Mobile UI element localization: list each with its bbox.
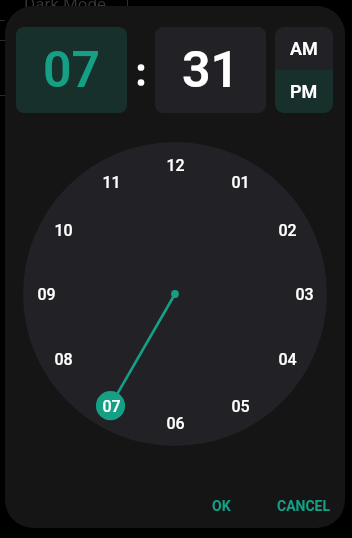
button[interactable]: 31 (155, 27, 266, 113)
staticText: AM (290, 38, 318, 59)
staticText: 03 (295, 285, 314, 304)
button[interactable]: CANCEL (265, 490, 343, 522)
staticText: CANCEL (277, 498, 331, 514)
button[interactable]: OK (200, 490, 243, 522)
staticText: 10 (54, 221, 73, 240)
button[interactable]: 03 (289, 279, 319, 309)
staticText: 04 (278, 350, 297, 369)
staticText: 07 (43, 41, 101, 100)
staticText: PM (290, 81, 318, 102)
staticText: 01 (231, 173, 250, 192)
button[interactable]: 08 (48, 344, 78, 374)
staticText: 02 (278, 221, 297, 240)
button[interactable]: PM (275, 70, 333, 113)
staticText: 05 (231, 397, 250, 416)
button[interactable]: 11 (96, 167, 126, 197)
staticText: 12 (166, 156, 185, 175)
button[interactable]: 05 (225, 391, 255, 421)
button[interactable]: 02 (272, 215, 302, 245)
button[interactable]: 07 (96, 391, 126, 421)
staticText: Dark Mode (24, 0, 107, 14)
staticText: 06 (166, 414, 185, 433)
button[interactable]: 06 (160, 408, 190, 438)
staticText: 07 (102, 397, 121, 416)
staticText: 31 (182, 41, 240, 100)
staticText: 08 (54, 350, 73, 369)
staticText: OK (212, 498, 231, 514)
button[interactable]: 04 (272, 344, 302, 374)
button[interactable]: 07 (16, 27, 127, 113)
button[interactable]: AM (275, 27, 333, 70)
staticText: 09 (37, 285, 56, 304)
button[interactable]: 09 (31, 279, 61, 309)
button[interactable]: 01 (225, 167, 255, 197)
staticText: 11 (102, 173, 121, 192)
button[interactable]: 10 (48, 215, 78, 245)
button[interactable]: 12 (160, 150, 190, 180)
other: Clock face, 7 o'clock selected (23, 142, 327, 446)
